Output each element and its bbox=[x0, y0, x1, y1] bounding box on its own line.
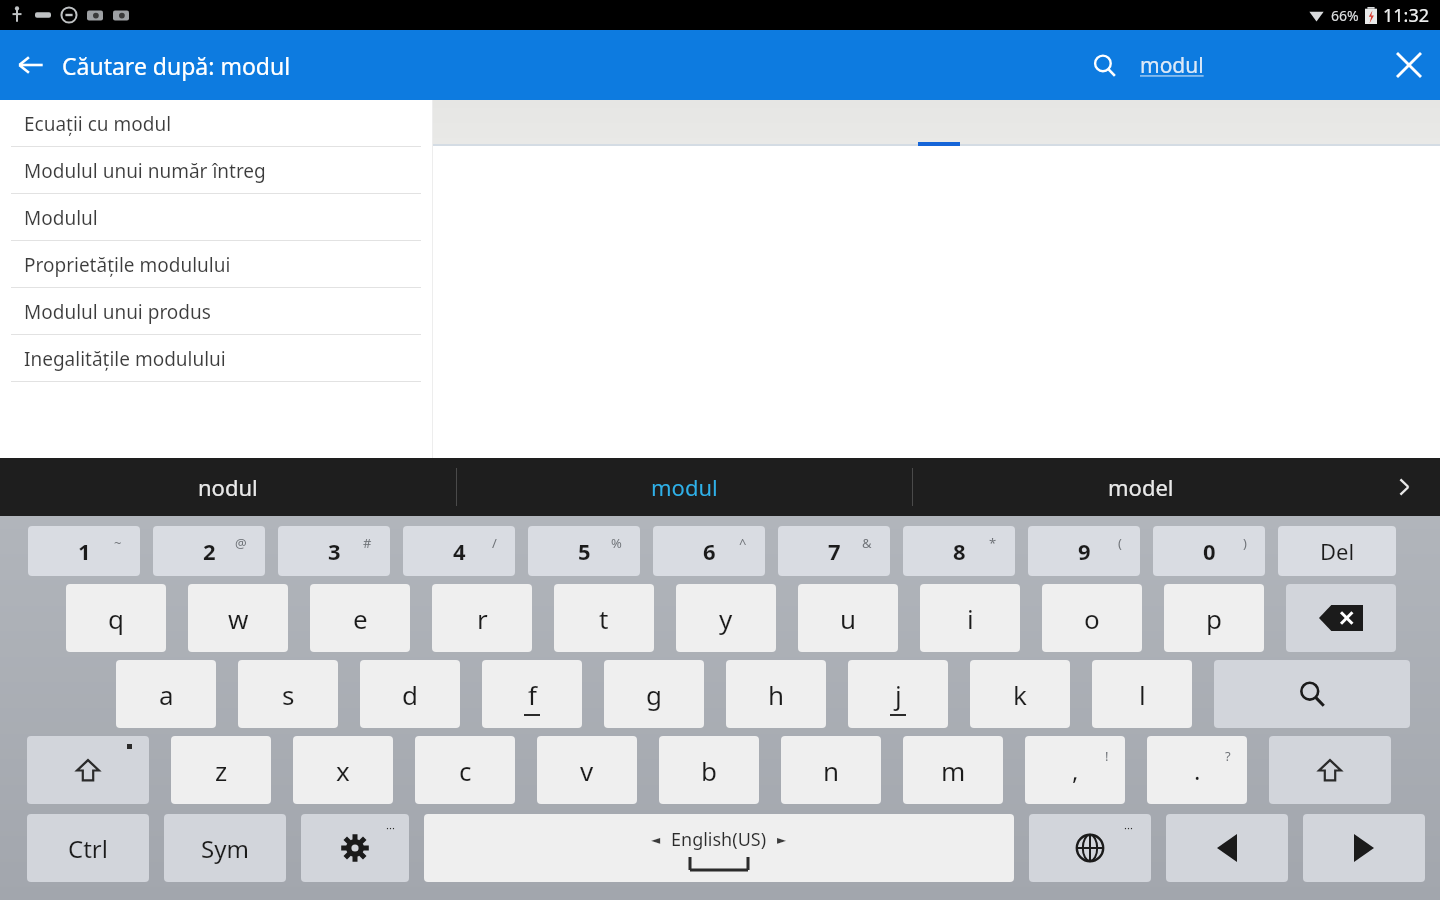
button[interactable]: Proprietățile modulului bbox=[0, 241, 432, 288]
button[interactable]: 6 bbox=[653, 526, 765, 576]
button[interactable]: Shift bbox=[27, 736, 149, 804]
button[interactable]: Move cursor right bbox=[1303, 814, 1425, 882]
button[interactable]: b bbox=[659, 736, 759, 804]
button[interactable]: z bbox=[171, 736, 271, 804]
button[interactable]: k bbox=[970, 660, 1070, 728]
staticText: modul bbox=[651, 472, 718, 502]
staticText: English(US) bbox=[671, 827, 767, 852]
button[interactable]: Modulul unui produs bbox=[0, 288, 432, 335]
button[interactable]: Shift bbox=[1269, 736, 1391, 804]
button[interactable]: 9 bbox=[1028, 526, 1140, 576]
staticText: 2 bbox=[203, 536, 216, 566]
button[interactable]: 0 bbox=[1153, 526, 1265, 576]
button[interactable]: l bbox=[1092, 660, 1192, 728]
button[interactable]: r bbox=[432, 584, 532, 652]
staticText: n bbox=[823, 753, 840, 788]
button[interactable]: Move cursor left bbox=[1166, 814, 1288, 882]
button[interactable]: nodul bbox=[0, 458, 456, 516]
staticText: w bbox=[228, 601, 249, 636]
button[interactable]: Modulul bbox=[0, 194, 432, 241]
button[interactable]: Modulul unui număr întreg bbox=[0, 147, 432, 194]
button[interactable]: i bbox=[920, 584, 1020, 652]
staticText: f bbox=[528, 677, 537, 712]
button[interactable]: f bbox=[482, 660, 582, 728]
staticText: Modulul unui produs bbox=[24, 299, 211, 325]
button[interactable]: Ecuații cu modul bbox=[0, 100, 432, 147]
button[interactable]: Inegalitățile modulului bbox=[0, 335, 432, 382]
staticText: , bbox=[1072, 754, 1079, 787]
button[interactable]: Back bbox=[0, 34, 62, 96]
staticText: 6 bbox=[703, 536, 716, 566]
staticText: q bbox=[108, 601, 124, 636]
staticText: r bbox=[477, 601, 488, 636]
button[interactable]: d bbox=[360, 660, 460, 728]
button[interactable]: 1 bbox=[28, 526, 140, 576]
staticText: e bbox=[353, 601, 368, 636]
button[interactable]: t bbox=[554, 584, 654, 652]
staticText: 5 bbox=[578, 536, 591, 566]
staticText: 1 bbox=[78, 536, 91, 566]
staticText: 4 bbox=[453, 536, 466, 566]
button[interactable]: Change language bbox=[1029, 814, 1151, 882]
staticText: 11:32 bbox=[1383, 3, 1430, 28]
button[interactable]: c bbox=[415, 736, 515, 804]
staticText: 66% bbox=[1331, 6, 1359, 25]
button[interactable]: u bbox=[798, 584, 898, 652]
button[interactable]: 8 bbox=[903, 526, 1015, 576]
staticText: y bbox=[719, 601, 733, 636]
button[interactable]: Close bbox=[1378, 34, 1440, 96]
button[interactable]: Keyboard settings bbox=[301, 814, 409, 882]
staticText: t bbox=[599, 601, 609, 636]
button[interactable]: modul bbox=[1088, 51, 1208, 80]
staticText: ◄ bbox=[651, 833, 661, 847]
staticText: Inegalitățile modulului bbox=[24, 346, 226, 372]
staticText: j bbox=[895, 677, 902, 712]
button[interactable]: y bbox=[676, 584, 776, 652]
button[interactable]: Backspace bbox=[1286, 584, 1396, 652]
button[interactable]: Sym bbox=[164, 814, 286, 882]
staticText: 0 bbox=[1203, 536, 1216, 566]
button[interactable]: w bbox=[188, 584, 288, 652]
button[interactable]: Search bbox=[1214, 660, 1410, 728]
staticText: @ bbox=[235, 534, 247, 552]
button[interactable]: q bbox=[66, 584, 166, 652]
button[interactable]: Del bbox=[1278, 526, 1396, 576]
button[interactable]: v bbox=[537, 736, 637, 804]
button[interactable]: 3 bbox=[278, 526, 390, 576]
button[interactable]: p bbox=[1164, 584, 1264, 652]
button[interactable]: model bbox=[913, 458, 1368, 516]
staticText: Ctrl bbox=[68, 832, 108, 865]
button[interactable]: e bbox=[310, 584, 410, 652]
button[interactable]: s bbox=[238, 660, 338, 728]
button[interactable]: m bbox=[903, 736, 1003, 804]
staticText: % bbox=[611, 534, 622, 552]
button[interactable]: 5 bbox=[528, 526, 640, 576]
button[interactable]: . bbox=[1147, 736, 1247, 804]
button[interactable]: o bbox=[1042, 584, 1142, 652]
staticText: ··· bbox=[1124, 820, 1133, 835]
staticText: Sym bbox=[201, 832, 249, 865]
staticText: i bbox=[967, 601, 974, 636]
button[interactable]: 2 bbox=[153, 526, 265, 576]
button[interactable]: h bbox=[726, 660, 826, 728]
staticText: 7 bbox=[828, 536, 841, 566]
staticText: ~ bbox=[114, 534, 122, 552]
button[interactable]: Ctrl bbox=[27, 814, 149, 882]
button[interactable]: modul bbox=[457, 458, 912, 516]
button[interactable]: More suggestions bbox=[1368, 458, 1440, 516]
button[interactable]: a bbox=[116, 660, 216, 728]
button[interactable]: x bbox=[293, 736, 393, 804]
button[interactable]: Space bbox=[424, 814, 1014, 882]
button[interactable]: n bbox=[781, 736, 881, 804]
button[interactable]: g bbox=[604, 660, 704, 728]
staticText: u bbox=[840, 601, 857, 636]
button[interactable]: 4 bbox=[403, 526, 515, 576]
staticText: c bbox=[459, 753, 472, 788]
button[interactable]: , bbox=[1025, 736, 1125, 804]
button[interactable]: 7 bbox=[778, 526, 890, 576]
staticText: b bbox=[701, 753, 717, 788]
staticText: d bbox=[402, 677, 418, 712]
button[interactable]: j bbox=[848, 660, 948, 728]
staticText: model bbox=[1108, 472, 1174, 502]
staticText: Căutare după: modul bbox=[62, 50, 291, 81]
